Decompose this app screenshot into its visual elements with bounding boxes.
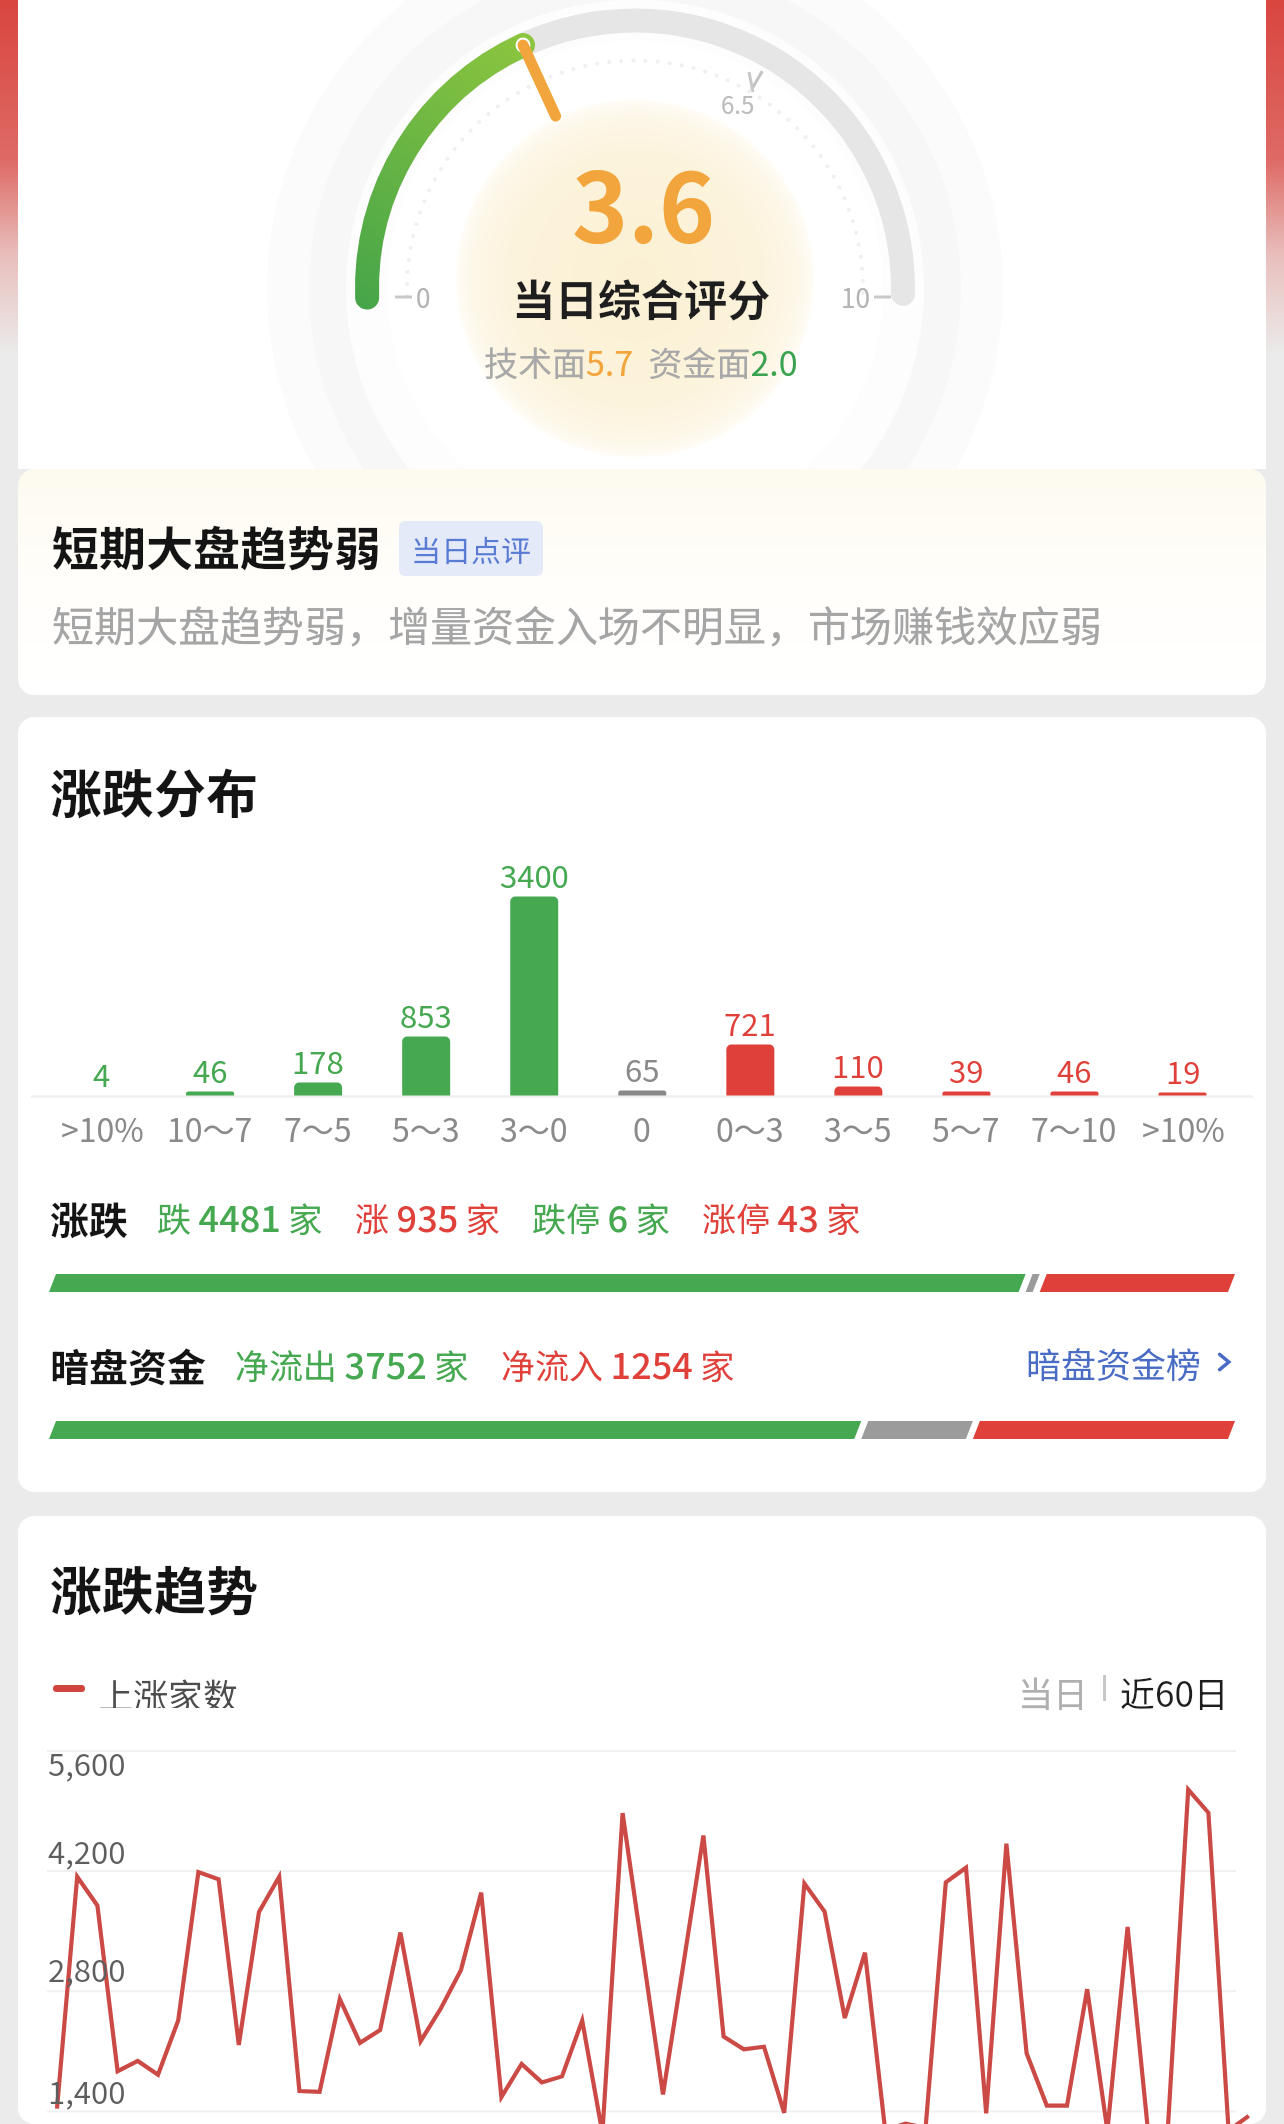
staticText: 0 bbox=[416, 278, 431, 316]
staticText: 0 bbox=[633, 1105, 651, 1149]
staticText: 涨跌 bbox=[50, 1190, 129, 1240]
staticText: 短期大盘趋势弱 bbox=[52, 511, 381, 579]
staticText: >10% bbox=[1142, 1105, 1225, 1149]
staticText: 1,400 bbox=[48, 2068, 126, 2113]
button[interactable]: 当日 bbox=[1016, 1666, 1091, 1710]
staticText: 65 bbox=[625, 1046, 660, 1088]
staticText: 2,800 bbox=[48, 1946, 126, 1991]
staticText: 39 bbox=[949, 1047, 984, 1089]
staticText: 46 bbox=[193, 1047, 228, 1089]
staticText: 净流入 1254 家 bbox=[501, 1337, 735, 1387]
staticText: 10 bbox=[841, 278, 870, 316]
staticText: 3400 bbox=[500, 852, 569, 894]
button[interactable]: 当日综合评分 3.6 bbox=[18, 0, 1266, 469]
staticText: 3～5 bbox=[824, 1105, 892, 1149]
staticText: 5～7 bbox=[932, 1105, 1000, 1149]
staticText: 暗盘资金榜 bbox=[1026, 1337, 1202, 1387]
staticText: 近60日 bbox=[1120, 1666, 1229, 1710]
staticText: 5～3 bbox=[392, 1105, 460, 1149]
staticText: 10～7 bbox=[167, 1105, 253, 1149]
staticText: 19 bbox=[1166, 1048, 1201, 1090]
staticText: 当日点评 bbox=[411, 527, 531, 570]
staticText: 3～0 bbox=[500, 1105, 568, 1149]
staticText: 涨停 43 家 bbox=[702, 1190, 861, 1240]
staticText: 853 bbox=[400, 992, 452, 1034]
staticText: 涨跌趋势 bbox=[50, 1550, 259, 1625]
button[interactable]: 近60日 bbox=[1118, 1666, 1231, 1710]
staticText: 暗盘资金 bbox=[50, 1337, 207, 1387]
staticText: 4,200 bbox=[48, 1828, 126, 1873]
staticText: 6.5 bbox=[721, 86, 755, 121]
staticText: 涨跌分布 bbox=[50, 753, 259, 828]
staticText: 721 bbox=[724, 1000, 776, 1042]
staticText: >10% bbox=[61, 1105, 144, 1149]
staticText: 46 bbox=[1057, 1047, 1092, 1089]
staticText: 净流出 3752 家 bbox=[235, 1337, 469, 1387]
staticText: 4 bbox=[93, 1051, 111, 1093]
button[interactable]: 暗盘资金榜 bbox=[1026, 1337, 1234, 1387]
staticText: 110 bbox=[832, 1042, 884, 1084]
staticText: 7～10 bbox=[1031, 1105, 1117, 1149]
staticText: 上涨家数 bbox=[98, 1668, 239, 1708]
staticText: 0～3 bbox=[716, 1105, 784, 1149]
staticText: 当日 bbox=[1018, 1666, 1089, 1710]
staticText: 涨 935 家 bbox=[355, 1190, 500, 1240]
button[interactable]: 短期大盘趋势弱 bbox=[18, 469, 1266, 695]
staticText: 3.6 bbox=[572, 133, 715, 271]
other: 查看暗盘资金榜 bbox=[1214, 1352, 1234, 1372]
staticText: 当日综合评分 bbox=[512, 266, 770, 328]
staticText: 技术面5.7 资金面2.0 bbox=[484, 337, 798, 386]
staticText: 7～5 bbox=[284, 1105, 352, 1149]
staticText: 短期大盘趋势弱，增量资金入场不明显，市场赚钱效应弱 bbox=[52, 593, 1103, 654]
staticText: 跌 4481 家 bbox=[157, 1190, 323, 1240]
staticText: 178 bbox=[292, 1038, 344, 1080]
staticText: 跌停 6 家 bbox=[532, 1190, 670, 1240]
staticText: 5,600 bbox=[48, 1740, 126, 1785]
